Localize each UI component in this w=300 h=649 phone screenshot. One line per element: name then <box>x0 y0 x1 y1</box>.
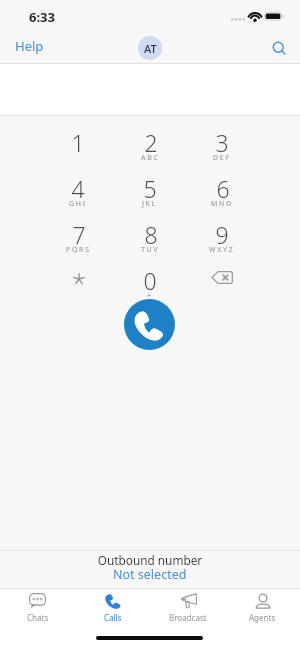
button[interactable]: AT <box>138 36 162 60</box>
staticText: TUV <box>141 245 160 255</box>
staticText: JKL <box>142 199 158 209</box>
button[interactable] <box>42 266 114 312</box>
button[interactable] <box>186 266 258 312</box>
button[interactable]: Calls <box>75 593 150 625</box>
button[interactable]: 2 <box>114 128 186 174</box>
button[interactable]: 4 <box>42 174 114 220</box>
button[interactable]: Not selected <box>105 566 195 582</box>
staticText: WXYZ <box>209 245 235 255</box>
staticText: 6:33 <box>29 8 55 26</box>
staticText: 1 <box>71 127 85 158</box>
button[interactable]: 1 <box>42 128 114 174</box>
staticText: 3 <box>215 127 229 158</box>
staticText: 5 <box>143 173 157 204</box>
staticText: Help <box>15 37 44 55</box>
staticText: MNO <box>211 199 234 209</box>
staticText: GHI <box>69 199 87 209</box>
staticText: DEF <box>213 153 231 163</box>
button[interactable]: 3 <box>186 128 258 174</box>
staticText: Agents <box>249 612 276 623</box>
button[interactable]: 0 <box>114 266 186 312</box>
staticText: 9 <box>215 219 229 250</box>
staticText: 8 <box>144 219 158 250</box>
staticText: 0 <box>143 265 157 296</box>
button[interactable]: Chats <box>0 593 75 625</box>
button[interactable]: 8 <box>114 220 186 266</box>
staticText: PQRS <box>66 245 91 255</box>
staticText: Outbound number <box>0 552 300 568</box>
button[interactable]: Call <box>124 299 175 350</box>
staticText: 2 <box>144 127 158 158</box>
button[interactable]: 9 <box>186 220 258 266</box>
staticText: + <box>147 291 153 301</box>
staticText: Chats <box>27 612 49 623</box>
staticText: 4 <box>71 173 85 204</box>
button[interactable]: Help <box>10 33 49 59</box>
staticText: Calls <box>104 612 122 623</box>
button[interactable]: Agents <box>225 593 300 625</box>
button[interactable]: 5 <box>114 174 186 220</box>
button[interactable]: Broadcast <box>150 593 225 625</box>
staticText: 7 <box>72 219 86 250</box>
button[interactable]: Search <box>262 34 290 62</box>
button[interactable]: 6 <box>186 174 258 220</box>
staticText: AT <box>144 41 157 56</box>
staticText: Not selected <box>113 566 187 582</box>
staticText: 6 <box>216 173 230 204</box>
staticText: Broadcast <box>169 612 207 623</box>
staticText: ABC <box>141 153 160 163</box>
button[interactable]: 7 <box>42 220 114 266</box>
